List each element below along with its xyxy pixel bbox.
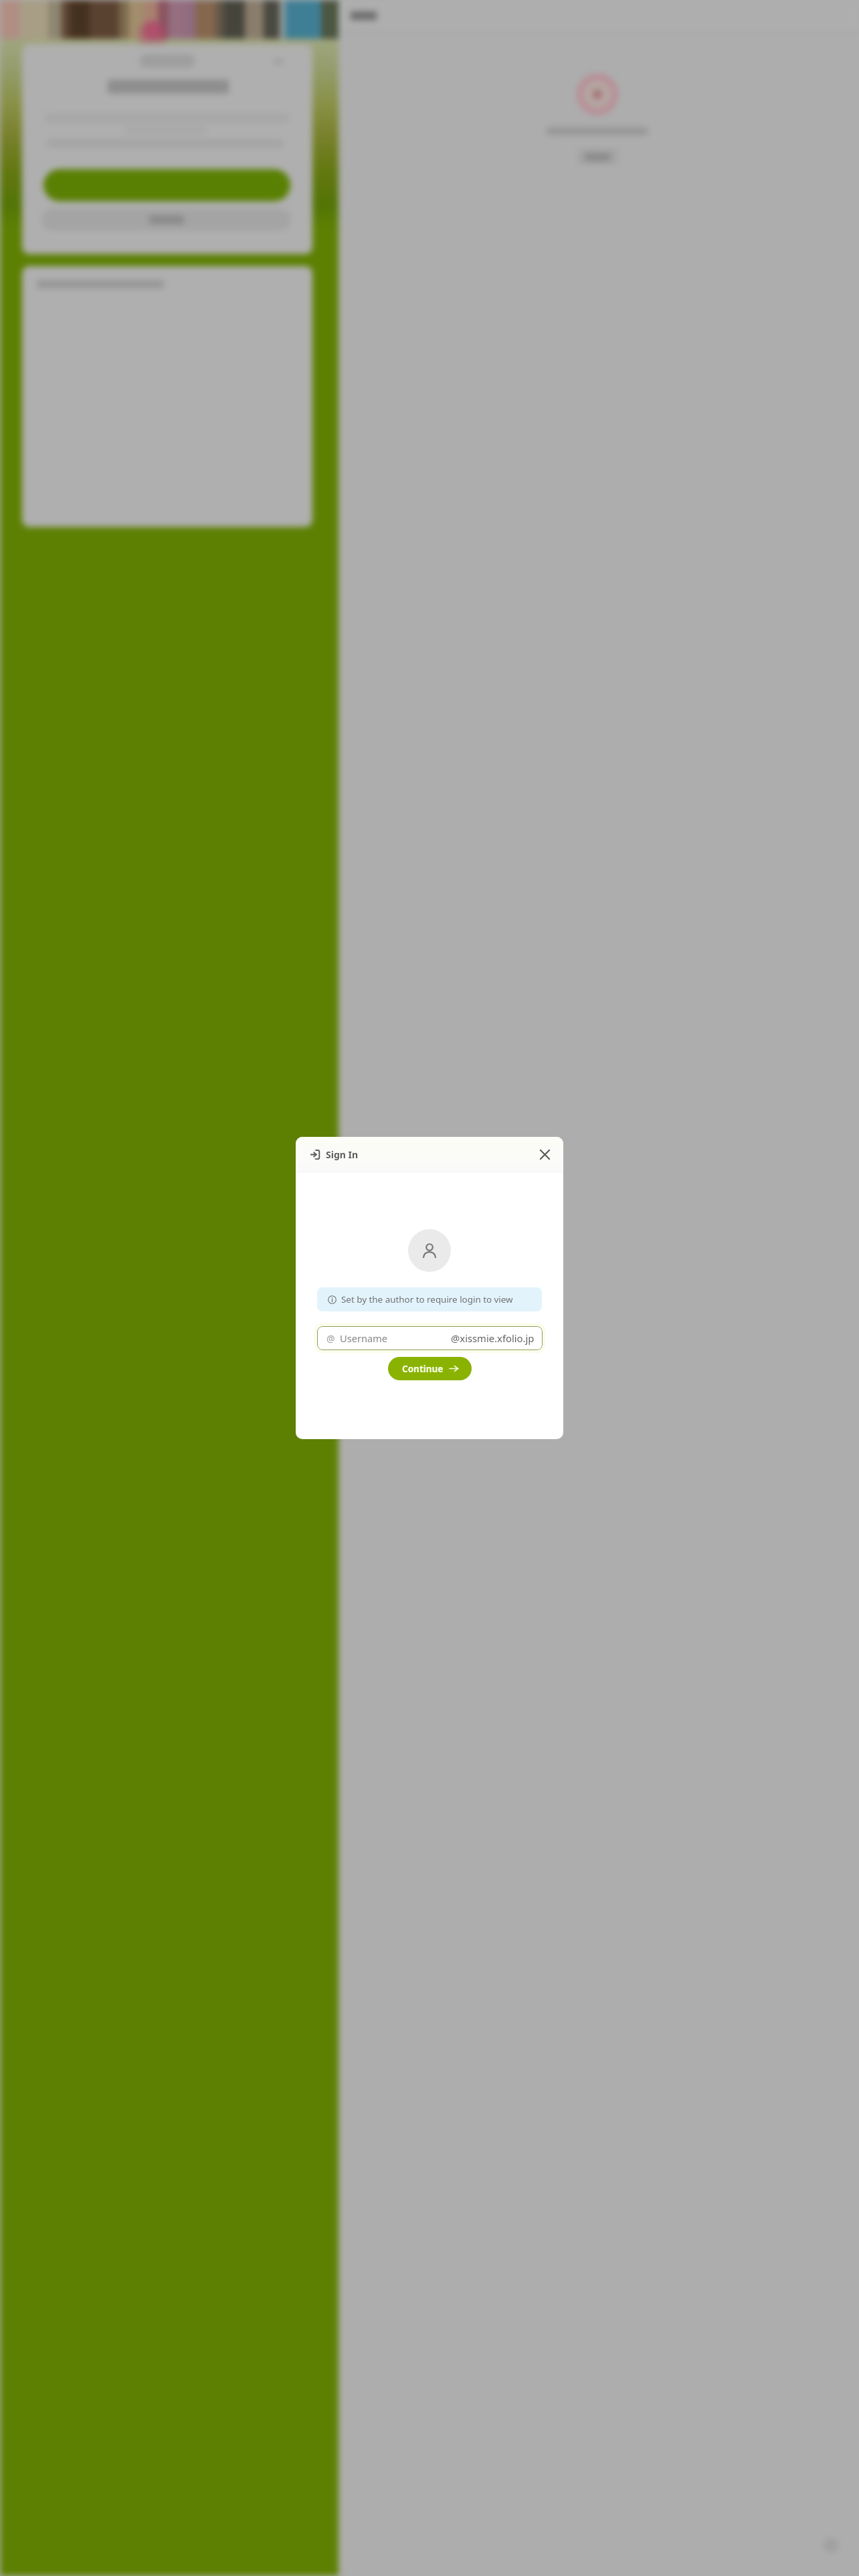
staticText: @xissmie.xfolio.jp (451, 1331, 535, 1345)
button[interactable]: Close (534, 1144, 555, 1165)
staticText: @ (326, 1332, 335, 1345)
staticText: Continue (402, 1363, 444, 1375)
button[interactable]: Sign In (304, 1137, 365, 1172)
staticText: Set by the author to require login to vi… (341, 1293, 513, 1305)
button[interactable]: @ (317, 1326, 543, 1350)
staticText: Sign In (326, 1148, 359, 1161)
staticText: Username (340, 1331, 387, 1345)
button[interactable]: Continue (388, 1357, 472, 1380)
